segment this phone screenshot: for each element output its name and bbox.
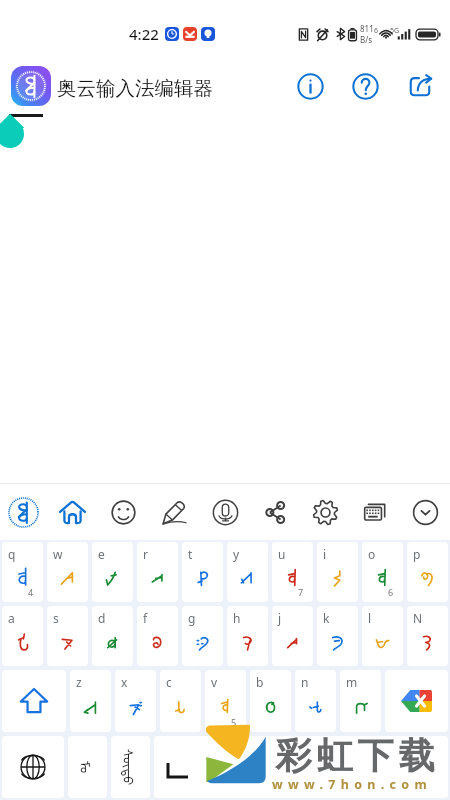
staticText: r (143, 546, 148, 562)
staticText: 彩虹下载 (273, 733, 437, 778)
button[interactable]: b (250, 670, 291, 732)
staticText: 4 (28, 586, 34, 598)
staticText: x (121, 674, 128, 690)
button[interactable]: Settings (300, 484, 350, 540)
button[interactable]: g (182, 606, 223, 666)
staticText: b (256, 674, 264, 690)
button[interactable]: j (272, 606, 313, 666)
staticText: w (53, 546, 63, 562)
staticText: m (346, 674, 358, 690)
button[interactable]: p (407, 542, 448, 602)
button[interactable]: z (70, 670, 111, 732)
staticText: www.7hon.com (272, 776, 432, 793)
button[interactable]: Backspace (385, 670, 448, 732)
button[interactable]: Share (250, 484, 300, 540)
staticText: 奥云输入法编辑器 (57, 76, 213, 101)
staticText: v (211, 674, 218, 690)
button[interactable]: d (92, 606, 133, 666)
button[interactable]: Keyboard layout (350, 484, 400, 540)
button[interactable]: Emoji (98, 484, 149, 540)
button[interactable]: k (317, 606, 358, 666)
button[interactable]: Input method (0, 484, 47, 540)
staticText: k (323, 610, 330, 626)
staticText: f (143, 610, 148, 626)
staticText: s (53, 610, 59, 626)
button[interactable]: ᠮᠤ (68, 736, 107, 798)
staticText: 5 (231, 716, 237, 728)
button[interactable]: y (227, 542, 268, 602)
staticText: d (98, 610, 106, 626)
button[interactable]: Switch language (2, 736, 64, 798)
button[interactable]: c (160, 670, 201, 732)
button[interactable]: x (115, 670, 156, 732)
staticText: j (278, 610, 282, 626)
button[interactable]: Help (347, 68, 383, 104)
button[interactable]: Voice input (200, 484, 250, 540)
button[interactable]: s (47, 606, 88, 666)
button[interactable]: ᠰᠦᠳᠦ (111, 736, 150, 798)
staticText: p (413, 546, 421, 562)
button[interactable]: e (92, 542, 133, 602)
button[interactable]: N (407, 606, 448, 666)
button[interactable]: Info (292, 68, 328, 104)
staticText: ᠮᠤ (76, 761, 99, 774)
staticText: y (233, 546, 240, 562)
staticText: e (98, 546, 105, 562)
staticText: N (413, 610, 423, 626)
button[interactable]: q (2, 542, 43, 602)
button[interactable]: Collapse (400, 484, 450, 540)
button[interactable]: u (272, 542, 313, 602)
staticText: 5G (390, 26, 400, 36)
staticText: 6 (388, 586, 394, 598)
staticText: z (76, 674, 82, 690)
button[interactable]: a (2, 606, 43, 666)
button[interactable]: Share (402, 68, 438, 104)
staticText: 4:22 (129, 24, 159, 44)
button[interactable]: h (227, 606, 268, 666)
staticText: n (301, 674, 309, 690)
button[interactable]: o (362, 542, 403, 602)
staticText: h (233, 610, 241, 626)
staticText: q (8, 546, 16, 562)
button[interactable]: r (137, 542, 178, 602)
button[interactable]: m (340, 670, 381, 732)
staticText: u (278, 546, 286, 562)
button[interactable]: n (295, 670, 336, 732)
staticText: ᠰᠦᠳᠦ (119, 749, 142, 786)
staticText: l (368, 610, 372, 626)
button[interactable]: Shift (2, 670, 66, 732)
button[interactable]: Home (47, 484, 98, 540)
staticText: c (166, 674, 172, 690)
staticText: o (368, 546, 376, 562)
staticText: i (323, 546, 327, 562)
staticText: 6 (374, 26, 379, 36)
staticText: 7 (298, 586, 304, 598)
button[interactable]: f (137, 606, 178, 666)
button[interactable] (11, 66, 51, 106)
staticText: t (188, 546, 193, 562)
button[interactable]: t (182, 542, 223, 602)
staticText: a (8, 610, 15, 626)
staticText: 811 (360, 23, 374, 34)
button[interactable]: v (205, 670, 246, 732)
button[interactable]: l (362, 606, 403, 666)
button[interactable]: i (317, 542, 358, 602)
button[interactable]: Handwriting (149, 484, 200, 540)
button[interactable]: Space (154, 736, 448, 798)
staticText: g (188, 610, 196, 626)
button[interactable]: w (47, 542, 88, 602)
staticText: B/s (360, 34, 373, 45)
